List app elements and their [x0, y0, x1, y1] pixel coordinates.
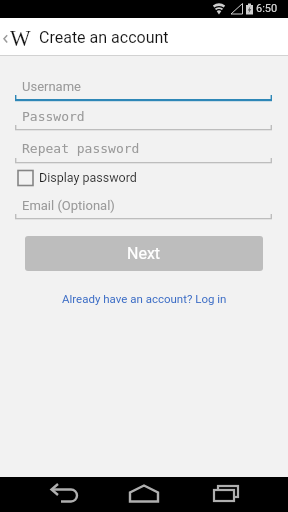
- button[interactable]: Email (Optional): [15, 195, 273, 221]
- button[interactable]: Already have an account? Log in: [62, 292, 227, 305]
- staticText: W: [10, 26, 31, 51]
- button[interactable]: [96, 477, 192, 512]
- staticText: Email (Optional): [22, 198, 115, 213]
- button[interactable]: Username: [15, 76, 273, 102]
- staticText: Repeat password: [22, 141, 140, 156]
- button[interactable]: [0, 477, 96, 512]
- staticText: Display password: [39, 170, 137, 185]
- staticText: Password: [22, 109, 85, 124]
- button[interactable]: Password: [15, 106, 273, 132]
- staticText: 6:50: [256, 2, 278, 15]
- button[interactable]: Next: [25, 236, 263, 271]
- button[interactable]: [192, 477, 288, 512]
- staticText: Create an account: [39, 28, 169, 47]
- button[interactable]: Repeat password: [15, 138, 273, 164]
- button[interactable]: W: [0, 18, 169, 56]
- staticText: Next: [127, 244, 161, 263]
- button[interactable]: Display password: [15, 168, 175, 188]
- staticText: Username: [22, 79, 81, 94]
